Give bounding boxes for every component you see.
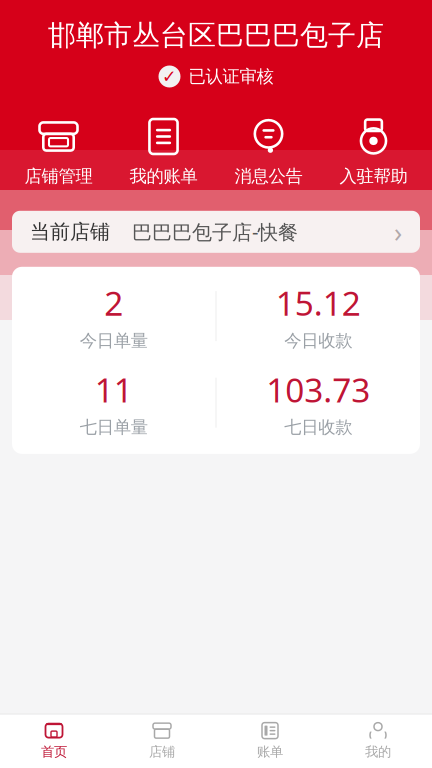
staticText: 巴巴巴包子店-快餐 bbox=[132, 218, 298, 245]
staticText: 我的账单 bbox=[129, 165, 197, 187]
staticText: 今日收款 bbox=[284, 330, 352, 351]
button[interactable]: 我的 bbox=[324, 715, 432, 768]
staticText: 103.73 bbox=[266, 367, 370, 412]
staticText: 账单 bbox=[257, 744, 283, 760]
staticText: 邯郸市丛台区巴巴巴包子店 bbox=[48, 18, 384, 52]
button[interactable]: 账单 bbox=[216, 715, 324, 768]
button[interactable]: 入驻帮助 bbox=[321, 115, 426, 189]
staticText: 11 bbox=[95, 367, 133, 412]
staticText: 已认证审核 bbox=[188, 66, 273, 87]
staticText: 当前店铺 bbox=[30, 219, 110, 244]
staticText: 首页 bbox=[41, 744, 67, 760]
staticText: › bbox=[394, 214, 402, 249]
staticText: ✓ bbox=[162, 67, 177, 86]
staticText: 入驻帮助 bbox=[339, 165, 407, 187]
button[interactable]: 店铺 bbox=[108, 715, 216, 768]
button[interactable]: 我的账单 bbox=[111, 115, 216, 189]
staticText: 我的 bbox=[365, 744, 391, 760]
button[interactable]: 首页 bbox=[0, 715, 108, 768]
button[interactable]: 消息公告 bbox=[216, 115, 321, 189]
staticText: 七日收款 bbox=[284, 417, 352, 438]
button[interactable]: 当前店铺 bbox=[12, 211, 420, 253]
staticText: 店铺管理 bbox=[24, 165, 92, 187]
staticText: 今日单量 bbox=[80, 330, 148, 351]
staticText: 2 bbox=[104, 281, 123, 325]
staticText: 七日单量 bbox=[80, 417, 148, 438]
staticText: 店铺 bbox=[149, 744, 175, 760]
button[interactable]: 店铺管理 bbox=[6, 115, 111, 189]
staticText: 消息公告 bbox=[234, 165, 302, 187]
staticText: 15.12 bbox=[276, 281, 361, 325]
